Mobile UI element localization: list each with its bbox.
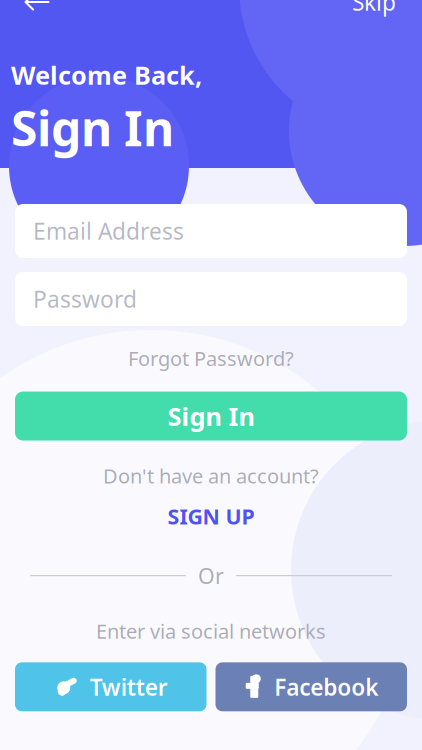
staticText: SIGN UP [167,502,254,530]
button[interactable]: Sign In [15,392,407,441]
staticText: Welcome Back, [11,58,202,92]
staticText: Don't have an account? [103,463,319,489]
staticText: Sign In [167,399,254,433]
staticText: Twitter [90,672,168,702]
staticText: Enter via social networks [96,618,326,644]
button[interactable]: Twitter [15,662,206,711]
button[interactable]: Back [10,0,64,24]
staticText: Email Address [33,216,184,246]
staticText: Password [33,284,137,314]
staticText: Skip [352,0,396,17]
button[interactable]: SIGN UP [153,499,268,533]
staticText: Forgot Password? [128,345,294,372]
button[interactable]: Skip [336,0,412,24]
button[interactable]: Facebook [215,662,407,711]
button[interactable]: Email Address [15,204,407,258]
button[interactable]: Password [15,272,407,326]
staticText: Facebook [274,672,378,702]
staticText: Or [198,561,224,590]
button[interactable]: Forgot Password? [114,340,308,377]
staticText: Sign In [11,96,174,159]
